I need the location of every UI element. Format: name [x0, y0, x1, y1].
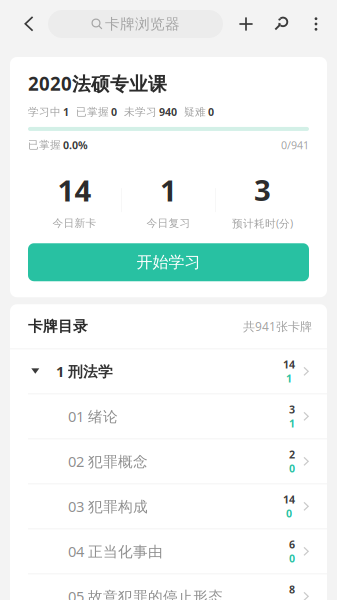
staticText: 预计耗时(分): [232, 216, 293, 230]
staticText: 疑难: [184, 105, 206, 118]
staticText: 共941张卡牌: [243, 318, 312, 334]
staticText: 已掌握: [76, 105, 109, 118]
staticText: 04 正当化事由: [68, 542, 163, 561]
staticText: 05 故意犯罪的停止形态: [68, 587, 223, 600]
button[interactable]: Back: [0, 0, 48, 48]
staticText: 3: [289, 402, 295, 416]
button[interactable]: 卡牌浏览器: [48, 10, 223, 38]
button[interactable]: 开始学习: [28, 243, 309, 281]
staticText: 0: [286, 506, 292, 520]
staticText: 02 犯罪概念: [68, 452, 148, 471]
button[interactable]: 1 刑法学: [10, 349, 327, 394]
staticText: 0.0%: [63, 138, 88, 152]
staticText: 940: [159, 105, 177, 119]
staticText: 开始学习: [136, 252, 200, 272]
staticText: 学习中: [28, 105, 61, 118]
button[interactable]: 03 犯罪构成: [10, 484, 327, 529]
staticText: 14: [57, 171, 91, 210]
staticText: 今日复习: [146, 217, 190, 230]
staticText: 1 刑法学: [56, 362, 113, 381]
staticText: 2020法硕专业课: [28, 71, 167, 96]
staticText: 01 绪论: [68, 407, 118, 426]
button[interactable]: Tools: [261, 0, 301, 48]
button[interactable]: More options: [301, 0, 331, 48]
staticText: 0: [289, 551, 295, 565]
staticText: 0: [208, 105, 214, 119]
staticText: 8: [289, 582, 295, 596]
staticText: 0/941: [281, 138, 309, 152]
staticText: 卡牌目录: [28, 317, 88, 335]
button[interactable]: 01 绪论: [10, 394, 327, 439]
staticText: 1: [289, 416, 295, 430]
staticText: 1: [160, 171, 177, 210]
staticText: 14: [283, 357, 295, 371]
button[interactable]: Add: [231, 0, 261, 48]
button[interactable]: 05 故意犯罪的停止形态: [10, 574, 327, 600]
button[interactable]: 02 犯罪概念: [10, 439, 327, 484]
button[interactable]: 04 正当化事由: [10, 529, 327, 574]
staticText: 6: [289, 537, 295, 551]
staticText: 2: [289, 447, 295, 461]
staticText: 14: [283, 492, 295, 506]
staticText: 0: [111, 105, 117, 119]
staticText: 已掌握: [28, 138, 61, 152]
staticText: 卡牌浏览器: [105, 15, 180, 33]
staticText: 今日新卡: [52, 217, 96, 230]
staticText: 0: [289, 461, 295, 475]
staticText: 1: [63, 105, 69, 119]
staticText: 1: [286, 371, 292, 385]
staticText: 03 犯罪构成: [68, 497, 148, 516]
staticText: 3: [254, 170, 271, 209]
staticText: 未学习: [124, 105, 157, 118]
